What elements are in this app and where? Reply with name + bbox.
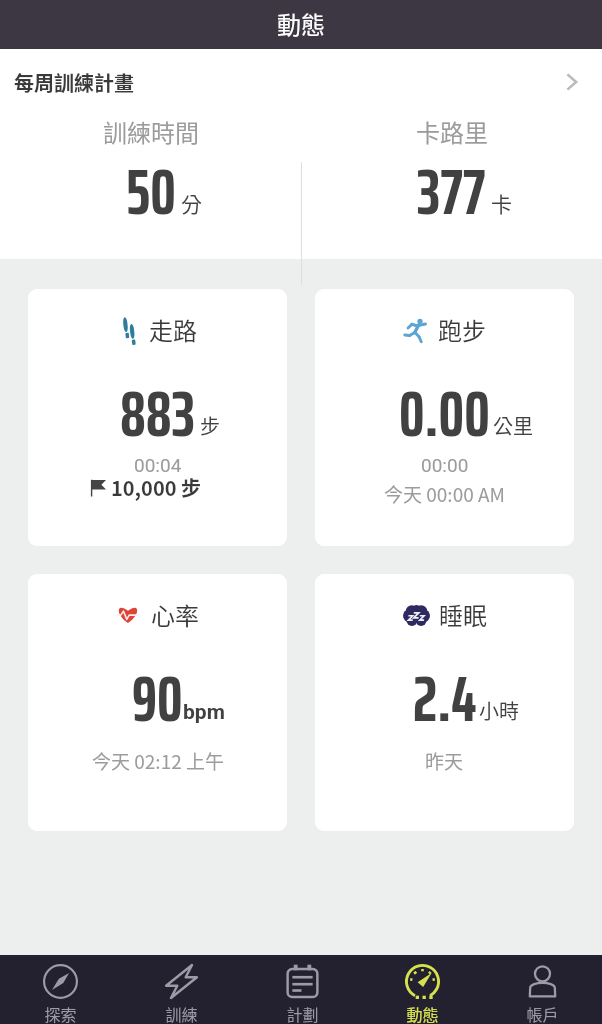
staticText: 動態: [406, 1002, 439, 1024]
button[interactable]: 訓練時間: [0, 101, 301, 259]
staticText: 每周訓練計畫: [14, 68, 134, 97]
staticText: 10,000 步: [111, 473, 202, 502]
button[interactable]: 卡路里: [301, 101, 602, 259]
button[interactable]: 動態: [362, 955, 482, 1024]
staticText: 0.00: [399, 363, 490, 464]
staticText: 卡路里: [416, 114, 488, 149]
staticText: 今天 02:12 上午: [92, 747, 224, 775]
staticText: 心率: [151, 597, 199, 632]
button[interactable]: 心率: [28, 574, 287, 831]
staticText: 昨天: [425, 747, 464, 775]
staticText: bpm: [183, 700, 225, 725]
button[interactable]: 走路: [28, 289, 287, 546]
button[interactable]: 訓練: [121, 955, 242, 1024]
staticText: 50: [126, 141, 176, 242]
staticText: 2.4: [413, 648, 477, 749]
staticText: 公里: [493, 411, 533, 440]
staticText: 睡眠: [439, 597, 487, 632]
staticText: 卡: [491, 188, 512, 218]
staticText: 分: [181, 188, 202, 218]
button[interactable]: 睡眠: [315, 574, 574, 831]
staticText: 今天 00:00 AM: [384, 480, 505, 508]
staticText: 訓練時間: [103, 114, 199, 149]
staticText: 小時: [479, 696, 519, 725]
staticText: 00:00: [421, 454, 469, 476]
other: Open weekly training plan: [559, 69, 585, 95]
button[interactable]: 每周訓練計畫: [0, 49, 602, 115]
staticText: 動態: [277, 6, 325, 41]
staticText: 377: [417, 141, 486, 242]
button[interactable]: 探索: [0, 955, 121, 1024]
staticText: 步: [200, 411, 220, 440]
staticText: 跑步: [438, 312, 486, 347]
button[interactable]: 計劃: [242, 955, 362, 1024]
staticText: 90: [132, 648, 183, 749]
button[interactable]: 跑步: [315, 289, 574, 546]
staticText: 883: [120, 363, 195, 464]
staticText: 00:04: [134, 454, 182, 476]
staticText: 計劃: [286, 1002, 319, 1024]
staticText: 探索: [44, 1002, 77, 1024]
staticText: 走路: [149, 312, 197, 347]
staticText: 訓練: [165, 1002, 198, 1024]
button[interactable]: 帳戶: [482, 955, 602, 1024]
staticText: 帳戶: [526, 1002, 559, 1024]
